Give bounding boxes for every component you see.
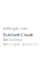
staticText: Start building [3, 38, 22, 42]
staticText: anthropic.com [3, 26, 28, 31]
staticText: Meet Claude Sonnet 4.5 [3, 43, 38, 46]
staticText: Build with Claude [3, 32, 33, 37]
